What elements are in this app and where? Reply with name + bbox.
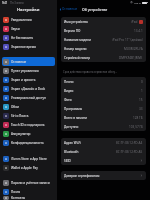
staticText: Экранное время — [11, 45, 36, 49]
staticText: 1 — [141, 89, 143, 93]
staticText: 13.4.1 — [134, 29, 143, 33]
button[interactable]: Песни — [61, 77, 146, 86]
button[interactable]: Видео — [61, 86, 146, 95]
button[interactable]: Пункт управления — [2, 66, 55, 75]
button[interactable]: Wallet и Apple Pay — [2, 163, 55, 172]
button[interactable]: iTunes Store и App Store — [2, 154, 55, 163]
staticText: 103,57 ГБ — [129, 125, 143, 129]
button[interactable]: Номер модели — [61, 44, 146, 53]
staticText: 15 — [139, 98, 143, 102]
staticText: Wallet и Apple Pay — [11, 166, 38, 170]
staticText: Программы — [64, 107, 83, 111]
staticText: Об устройстве — [82, 7, 108, 12]
staticText: Звуки — [11, 27, 20, 31]
staticText: 100 % — [134, 1, 141, 4]
staticText: DMPXF4B1JMVK — [119, 56, 143, 60]
button[interactable]: Аккумулятор — [2, 129, 55, 138]
staticText: 33 — [139, 107, 143, 111]
button[interactable]: Доверие сертификатам — [61, 171, 146, 180]
staticText: Не беспокоить — [11, 36, 34, 40]
staticText: MU0M2RU/A — [124, 47, 143, 51]
staticText: 8C:7F:3B:12:FD:A4 — [116, 141, 143, 145]
staticText: Аккумулятор — [11, 132, 31, 136]
button[interactable]: Программы — [61, 104, 146, 113]
button[interactable]: Название модели — [61, 35, 146, 44]
button[interactable]: Bluetooth — [61, 147, 146, 156]
button[interactable]: Доступно — [61, 122, 146, 131]
button[interactable]: Экран и яркость — [2, 75, 55, 84]
button[interactable]: Обои — [2, 102, 55, 111]
staticText: Пароли и учётные записи — [11, 181, 50, 185]
button[interactable]: Звуки — [2, 24, 55, 33]
staticText: Имя устройства — [64, 20, 88, 24]
button[interactable]: SEID — [61, 156, 146, 165]
button[interactable]: Адрес Wi-Fi — [61, 138, 146, 147]
staticText: Версия ПО — [64, 29, 81, 33]
staticText: Фото — [64, 98, 72, 102]
button[interactable]: Экран «Домой» и Dock — [2, 84, 55, 93]
button[interactable]: Экранное время — [2, 42, 55, 51]
button[interactable]: Имя устройства — [61, 17, 146, 26]
staticText: Обои — [11, 105, 19, 109]
staticText: 128 ГБ — [133, 116, 143, 120]
staticText: Настройки — [17, 7, 40, 12]
staticText: Универсальный доступ — [11, 96, 46, 100]
staticText: Серийный номер — [64, 56, 91, 60]
button[interactable]: Всего в памяти — [61, 113, 146, 122]
staticText: SEID — [64, 159, 71, 163]
staticText: Конфиденциальность — [11, 141, 44, 145]
button[interactable]: Версия ПО — [61, 26, 146, 35]
staticText: Номер модели — [64, 47, 87, 51]
staticText: Основные — [62, 7, 78, 11]
staticText: Основные — [11, 60, 27, 64]
staticText: Экран и яркость — [11, 78, 36, 82]
staticText: Пн 3 июня — [10, 1, 24, 5]
staticText: Песни — [64, 80, 74, 84]
staticText: Пункт управления — [11, 69, 39, 73]
staticText: Доступно — [64, 125, 79, 129]
staticText: Экран «Домой» и Dock — [11, 87, 46, 91]
button[interactable]: Touch ID и код-пароль — [2, 120, 55, 129]
button[interactable]: Фото — [61, 95, 146, 104]
staticText: Touch ID и код-пароль — [11, 123, 45, 127]
button[interactable]: Универсальный доступ — [2, 93, 55, 102]
staticText: iPad Pro 11" (дюйма) — [112, 38, 143, 42]
button[interactable]: Серийный номер — [61, 53, 146, 62]
staticText: 8C:7F:3B:12:FD:A5 — [116, 150, 143, 154]
staticText: Название модели — [64, 38, 91, 42]
staticText: Доверие сертификатам — [64, 174, 100, 178]
button[interactable]: Пароли и учётные записи — [2, 178, 55, 187]
staticText: Siri и Поиск — [11, 114, 29, 118]
button[interactable]: Siri и Поиск — [2, 111, 55, 120]
staticText: Адрес Wi-Fi — [64, 141, 81, 145]
staticText: Уведомления — [11, 18, 32, 22]
staticText: Срок действия права на сервисное обслу..… — [63, 70, 118, 74]
staticText: iTunes Store и App Store — [11, 157, 47, 161]
staticText: 9:41 — [2, 1, 8, 5]
button[interactable]: Основные — [2, 57, 55, 66]
staticText: Bluetooth — [64, 150, 79, 154]
staticText: Видео — [64, 89, 74, 93]
button[interactable]: Back to Основные — [59, 7, 78, 11]
staticText: 0 — [141, 80, 143, 84]
button[interactable]: Конфиденциальность — [2, 138, 55, 147]
button[interactable]: Контакты — [2, 196, 55, 200]
button[interactable]: Уведомления — [2, 15, 55, 24]
staticText: Почта — [11, 190, 21, 194]
button[interactable]: Почта — [2, 187, 55, 196]
staticText: Всего в памяти — [64, 116, 87, 120]
staticText: Контакты — [11, 196, 26, 200]
staticText: iPad — [131, 20, 138, 24]
button[interactable]: Не беспокоить — [2, 33, 55, 42]
